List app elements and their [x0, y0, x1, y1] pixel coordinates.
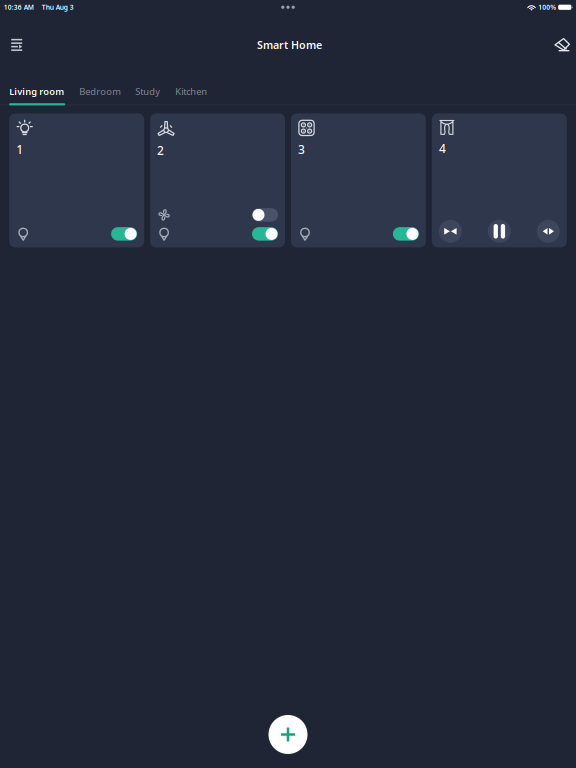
button[interactable]: Kitchen	[175, 71, 207, 109]
button[interactable]: Pause	[488, 220, 511, 243]
button[interactable]: 1	[9, 113, 144, 247]
button[interactable]: Turn off	[111, 227, 137, 241]
button[interactable]: Close curtain	[439, 220, 462, 243]
button[interactable]: Open curtain	[537, 220, 560, 243]
staticText: Living room	[9, 85, 64, 97]
button[interactable]: Living room	[9, 71, 65, 109]
button[interactable]: Bedroom	[79, 71, 121, 109]
staticText: 2	[157, 142, 164, 158]
staticText: Smart Home	[257, 38, 322, 52]
staticText: 1	[16, 141, 23, 157]
staticText: 10:36 AM	[4, 3, 34, 12]
staticText: 4	[439, 140, 446, 156]
button[interactable]: 2	[150, 113, 285, 247]
button[interactable]: Menu	[2, 30, 32, 60]
button[interactable]: Turn on	[252, 208, 278, 222]
staticText: Kitchen	[175, 85, 207, 97]
staticText: Thu Aug 3	[42, 3, 74, 12]
button[interactable]: Add device	[268, 715, 307, 754]
button[interactable]: Erase	[547, 30, 576, 60]
button[interactable]: 4	[432, 113, 567, 247]
staticText: Study	[135, 85, 160, 97]
staticText: 3	[298, 141, 305, 157]
button[interactable]: Study	[135, 71, 161, 109]
button[interactable]: Turn off	[252, 227, 278, 241]
button[interactable]: 3	[291, 113, 426, 247]
button[interactable]: Turn off	[393, 227, 419, 241]
staticText: 100%	[538, 3, 556, 12]
staticText: Bedroom	[79, 85, 121, 97]
